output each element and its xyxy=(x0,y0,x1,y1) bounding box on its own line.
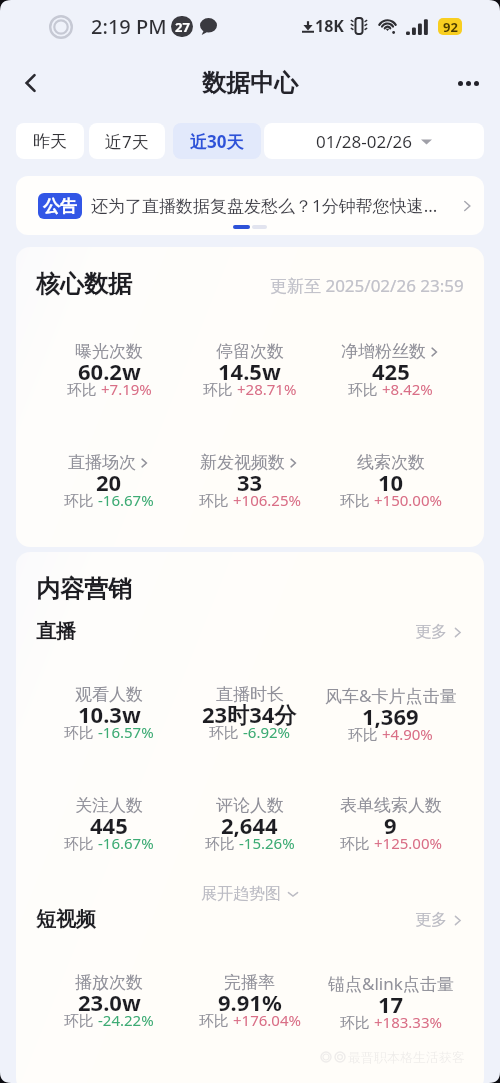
staticText: 完播率 xyxy=(224,972,275,993)
staticText: 23时34分 xyxy=(202,699,297,729)
staticText: 环比 xyxy=(199,1010,233,1030)
staticText: 60.2w xyxy=(78,356,141,386)
staticText: 92 xyxy=(443,18,458,35)
staticText: 环比 xyxy=(67,379,101,399)
staticText: 环比 xyxy=(209,722,243,742)
staticText: 01/28-02/26 xyxy=(316,130,412,153)
staticText: 风车&卡片点击量 xyxy=(325,684,457,707)
staticText: 环比 xyxy=(64,1010,98,1030)
staticText: -16.67% xyxy=(98,490,154,510)
button[interactable]: 表单线索人数 xyxy=(320,795,461,866)
staticText: 17 xyxy=(378,989,404,1019)
staticText: 公告 xyxy=(43,196,77,217)
staticText: +7.19% xyxy=(101,379,152,399)
button[interactable]: 展开趋势图 xyxy=(16,884,484,904)
staticText: 425 xyxy=(372,356,410,386)
button[interactable]: 更多 xyxy=(415,622,464,642)
button[interactable]: More options xyxy=(447,62,489,104)
button[interactable]: 关注人数 xyxy=(39,795,179,866)
staticText: 表单线索人数 xyxy=(340,795,442,816)
staticText: 曝光次数 xyxy=(75,341,143,362)
staticText: 直播时长 xyxy=(216,684,284,705)
button[interactable]: 完播率 xyxy=(179,972,320,1043)
staticText: 锚点&link点击量 xyxy=(328,972,454,995)
staticText: 环比 xyxy=(64,490,98,510)
staticText: +125.00% xyxy=(374,833,442,853)
button[interactable]: 昨天 xyxy=(16,123,84,159)
staticText: 昨天 xyxy=(33,131,67,152)
staticText: 环比 xyxy=(348,724,382,744)
staticText: 展开趋势图 xyxy=(201,884,281,904)
staticText: 环比 xyxy=(64,833,98,853)
staticText: 2:19 PM xyxy=(91,13,167,40)
staticText: 观看人数 xyxy=(75,684,143,705)
staticText: 内容营销 xyxy=(36,574,132,604)
staticText: 直播场次 xyxy=(68,452,136,473)
staticText: 新发视频数 xyxy=(200,452,285,473)
staticText: 环比 xyxy=(64,722,98,742)
button[interactable]: 直播时长 xyxy=(179,684,320,755)
staticText: 27 xyxy=(175,18,190,36)
staticText: 环比 xyxy=(205,833,239,853)
staticText: 10 xyxy=(378,467,404,497)
button[interactable]: 评论人数 xyxy=(179,795,320,866)
staticText: +4.90% xyxy=(382,724,433,744)
staticText: 短视频 xyxy=(36,907,96,932)
staticText: 线索次数 xyxy=(357,452,425,473)
button[interactable]: 新发视频数 xyxy=(179,452,320,523)
staticText: -16.67% xyxy=(98,833,154,853)
staticText: 445 xyxy=(90,810,128,840)
staticText: 播放次数 xyxy=(75,972,143,993)
button[interactable]: 更多 xyxy=(415,910,464,930)
button[interactable]: 公告 xyxy=(16,176,484,235)
staticText: +176.04% xyxy=(233,1010,301,1030)
staticText: 更多 xyxy=(415,622,447,642)
staticText: 环比 xyxy=(348,379,382,399)
staticText: +183.33% xyxy=(374,1012,442,1032)
staticText: 最晋职本格生活获客 xyxy=(348,1049,465,1065)
staticText: 23.0w xyxy=(78,987,141,1017)
staticText: -16.57% xyxy=(98,722,154,742)
button[interactable]: 直播场次 xyxy=(39,452,179,523)
staticText: -24.22% xyxy=(98,1010,154,1030)
staticText: 近30天 xyxy=(190,130,244,153)
staticText: 直播 xyxy=(36,619,76,644)
staticText: 环比 xyxy=(340,1012,374,1032)
button[interactable]: Back xyxy=(10,62,52,104)
staticText: 关注人数 xyxy=(75,795,143,816)
staticText: 环比 xyxy=(340,833,374,853)
button[interactable]: 停留次数 xyxy=(179,341,320,412)
staticText: +150.00% xyxy=(374,490,442,510)
staticText: 还为了直播数据复盘发愁么？1分钟帮您快速... xyxy=(91,194,438,217)
button[interactable]: 锚点&link点击量 xyxy=(320,972,461,1045)
button[interactable]: 线索次数 xyxy=(320,452,461,523)
staticText: 20 xyxy=(96,467,122,497)
staticText: 环比 xyxy=(340,490,374,510)
button[interactable]: 近30天 xyxy=(173,123,261,159)
button[interactable]: 近7天 xyxy=(89,123,165,159)
button[interactable]: 净增粉丝数 xyxy=(320,341,461,412)
staticText: 14.5w xyxy=(218,356,281,386)
staticText: 10.3w xyxy=(78,699,141,729)
button[interactable]: 01/28-02/26 xyxy=(264,123,484,159)
staticText: 净增粉丝数 xyxy=(341,341,426,362)
button[interactable]: 风车&卡片点击量 xyxy=(320,684,461,757)
staticText: +106.25% xyxy=(233,490,301,510)
staticText: 核心数据 xyxy=(36,269,132,299)
staticText: 33 xyxy=(237,467,263,497)
staticText: 9 xyxy=(384,810,397,840)
button[interactable]: 曝光次数 xyxy=(39,341,179,412)
staticText: 更新至 2025/02/26 23:59 xyxy=(270,274,464,297)
staticText: +28.71% xyxy=(237,379,297,399)
staticText: 数据中心 xyxy=(202,68,298,98)
staticText: 评论人数 xyxy=(216,795,284,816)
staticText: 近7天 xyxy=(105,130,149,153)
staticText: 更多 xyxy=(415,910,447,930)
staticText: 停留次数 xyxy=(216,341,284,362)
staticText: 18K xyxy=(315,15,344,37)
button[interactable]: 观看人数 xyxy=(39,684,179,755)
staticText: -15.26% xyxy=(239,833,295,853)
button[interactable]: 播放次数 xyxy=(39,972,179,1043)
staticText: -6.92% xyxy=(243,722,291,742)
staticText: 9.91% xyxy=(218,987,282,1017)
